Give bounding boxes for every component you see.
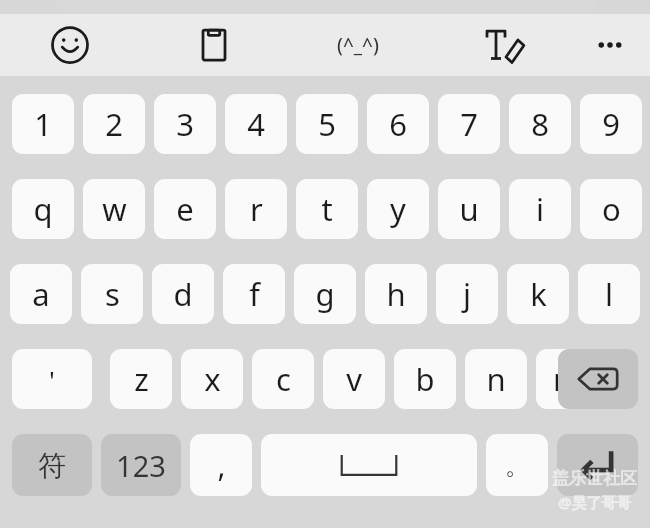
staticText: 。 — [505, 450, 530, 481]
staticText: s — [105, 273, 120, 315]
button[interactable]: q — [12, 179, 74, 239]
staticText: n — [486, 358, 506, 400]
button[interactable]: s — [81, 264, 143, 324]
button[interactable]: k — [507, 264, 569, 324]
staticText: l — [605, 273, 613, 315]
staticText: y — [390, 188, 406, 230]
button[interactable]: Space — [261, 434, 477, 496]
staticText: f — [249, 273, 260, 315]
staticText: m — [553, 358, 582, 400]
staticText: o — [602, 188, 621, 230]
button[interactable]: i — [509, 179, 571, 239]
staticText: 5 — [318, 103, 336, 145]
button[interactable]: m — [536, 349, 598, 409]
staticText: 1 — [34, 103, 52, 145]
staticText: 7 — [460, 103, 478, 145]
staticText: ' — [49, 362, 55, 397]
staticText: z — [134, 358, 149, 400]
button[interactable]: More options — [585, 20, 635, 70]
button[interactable]: x — [181, 349, 243, 409]
staticText: v — [346, 358, 362, 400]
button[interactable]: 6 — [367, 94, 429, 154]
button[interactable]: 1 — [12, 94, 74, 154]
staticText: 8 — [531, 103, 549, 145]
button[interactable]: 2 — [83, 94, 145, 154]
button[interactable]: g — [294, 264, 356, 324]
staticText: x — [204, 358, 221, 400]
button[interactable]: 符 — [12, 434, 92, 496]
staticText: 2 — [105, 103, 123, 145]
staticText: 6 — [389, 103, 407, 145]
button[interactable]: (^_^) — [318, 24, 398, 66]
staticText: j — [463, 273, 471, 315]
staticText: 3 — [176, 103, 194, 145]
button[interactable]: u — [438, 179, 500, 239]
staticText: u — [459, 188, 479, 230]
button[interactable]: ' — [12, 349, 92, 409]
button[interactable]: 4 — [225, 94, 287, 154]
button[interactable]: t — [296, 179, 358, 239]
button[interactable]: h — [365, 264, 427, 324]
button[interactable]: a — [10, 264, 72, 324]
staticText: e — [176, 188, 194, 230]
staticText: i — [536, 188, 544, 230]
button[interactable]: 。 — [486, 434, 548, 496]
staticText: c — [276, 358, 291, 400]
button[interactable]: 8 — [509, 94, 571, 154]
staticText: h — [386, 273, 406, 315]
button[interactable]: b — [394, 349, 456, 409]
staticText: d — [173, 273, 193, 315]
staticText: t — [321, 188, 333, 230]
button[interactable]: r — [225, 179, 287, 239]
staticText: 符 — [38, 448, 66, 483]
button[interactable]: w — [83, 179, 145, 239]
button[interactable]: o — [580, 179, 642, 239]
button[interactable]: 9 — [580, 94, 642, 154]
button[interactable]: 123 — [101, 434, 181, 496]
button[interactable]: d — [152, 264, 214, 324]
button[interactable]: Backspace — [558, 349, 638, 409]
button[interactable]: l — [578, 264, 640, 324]
button[interactable]: Enter — [557, 434, 638, 496]
button[interactable]: 3 — [154, 94, 216, 154]
button[interactable]: 5 — [296, 94, 358, 154]
staticText: k — [530, 273, 547, 315]
staticText: g — [315, 273, 335, 315]
button[interactable]: e — [154, 179, 216, 239]
staticText: a — [32, 273, 50, 315]
staticText: r — [250, 188, 263, 230]
button[interactable]: f — [223, 264, 285, 324]
button[interactable]: , — [190, 434, 252, 496]
staticText: (^_^) — [337, 32, 379, 58]
button[interactable]: Clipboard — [189, 20, 239, 70]
staticText: w — [102, 188, 127, 230]
button[interactable]: z — [110, 349, 172, 409]
staticText: 123 — [116, 446, 166, 485]
staticText: , — [217, 445, 226, 486]
staticText: 4 — [247, 103, 265, 145]
staticText: b — [415, 358, 435, 400]
button[interactable]: n — [465, 349, 527, 409]
button[interactable]: 7 — [438, 94, 500, 154]
button[interactable]: c — [252, 349, 314, 409]
staticText: 9 — [602, 103, 620, 145]
button[interactable]: Handwriting input — [477, 20, 527, 70]
button[interactable]: j — [436, 264, 498, 324]
staticText: @昊了哥哥 — [558, 492, 632, 512]
button[interactable]: v — [323, 349, 385, 409]
button[interactable]: y — [367, 179, 429, 239]
button[interactable]: Emoji — [45, 20, 95, 70]
staticText: q — [33, 188, 53, 230]
staticText: 盖乐世社区 — [552, 468, 637, 489]
